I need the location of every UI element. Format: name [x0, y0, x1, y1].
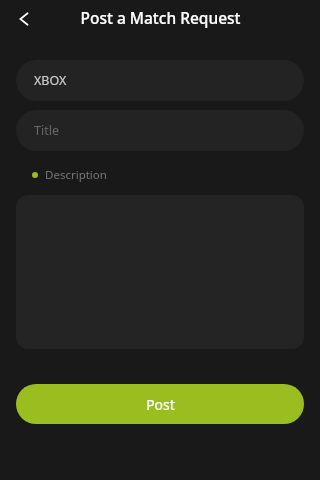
button[interactable]: XBOX [16, 60, 304, 101]
button[interactable]: Back [5, 0, 43, 38]
staticText: Post [146, 395, 175, 414]
staticText: Description [45, 167, 107, 183]
staticText: XBOX [34, 72, 67, 89]
staticText: Title [34, 122, 59, 139]
button[interactable]: Title [16, 110, 304, 151]
staticText: Post a Match Request [80, 7, 241, 28]
button[interactable]: Post [16, 384, 304, 424]
